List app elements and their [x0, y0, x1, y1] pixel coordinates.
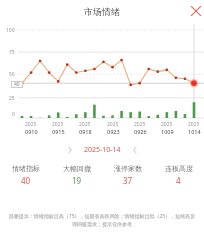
staticText: 25: [9, 95, 15, 102]
staticText: 2025: [134, 121, 146, 128]
staticText: 4: [176, 175, 181, 186]
staticText: 0923: [107, 128, 120, 135]
staticText: 0926: [134, 128, 147, 135]
button[interactable]: 涨停家数: [102, 164, 153, 186]
staticText: 0910: [25, 128, 38, 135]
staticText: 温馨提示：情绪指标过高（75），短期有杀跌风险；情绪指标过低（25），短线有反弹…: [7, 213, 197, 227]
button[interactable]: 后一天: [128, 143, 142, 157]
staticText: 连板高度: [165, 164, 193, 173]
staticText: 0918: [79, 128, 92, 135]
staticText: 1014: [188, 128, 201, 135]
staticText: 情绪指标: [12, 164, 40, 173]
button[interactable]: 大幅回撤: [51, 164, 102, 186]
staticText: 2025: [79, 121, 91, 128]
staticText: 40: [21, 175, 31, 186]
staticText: 75: [9, 49, 15, 56]
staticText: 2025: [188, 121, 200, 128]
staticText: 2025: [161, 121, 173, 128]
staticText: 大幅回撤: [63, 164, 91, 173]
button[interactable]: 连板高度: [153, 164, 204, 186]
staticText: 涨停家数: [114, 164, 142, 173]
staticText: 1009: [161, 128, 174, 135]
staticText: 19: [72, 175, 82, 186]
staticText: 0: [12, 111, 15, 118]
staticText: 100: [6, 27, 15, 34]
button[interactable]: 前一天: [63, 143, 77, 157]
staticText: 2025-10-14: [84, 145, 121, 155]
staticText: 40: [14, 81, 20, 88]
staticText: 2025: [52, 121, 64, 128]
staticText: 2025: [107, 121, 119, 128]
staticText: 0915: [52, 128, 65, 135]
staticText: 2025: [25, 121, 37, 128]
button[interactable]: 情绪指标: [0, 164, 51, 186]
staticText: 50: [9, 71, 15, 78]
staticText: 37: [123, 175, 133, 186]
button[interactable]: 关闭: [188, 3, 204, 19]
staticText: 市场情绪: [84, 6, 120, 17]
